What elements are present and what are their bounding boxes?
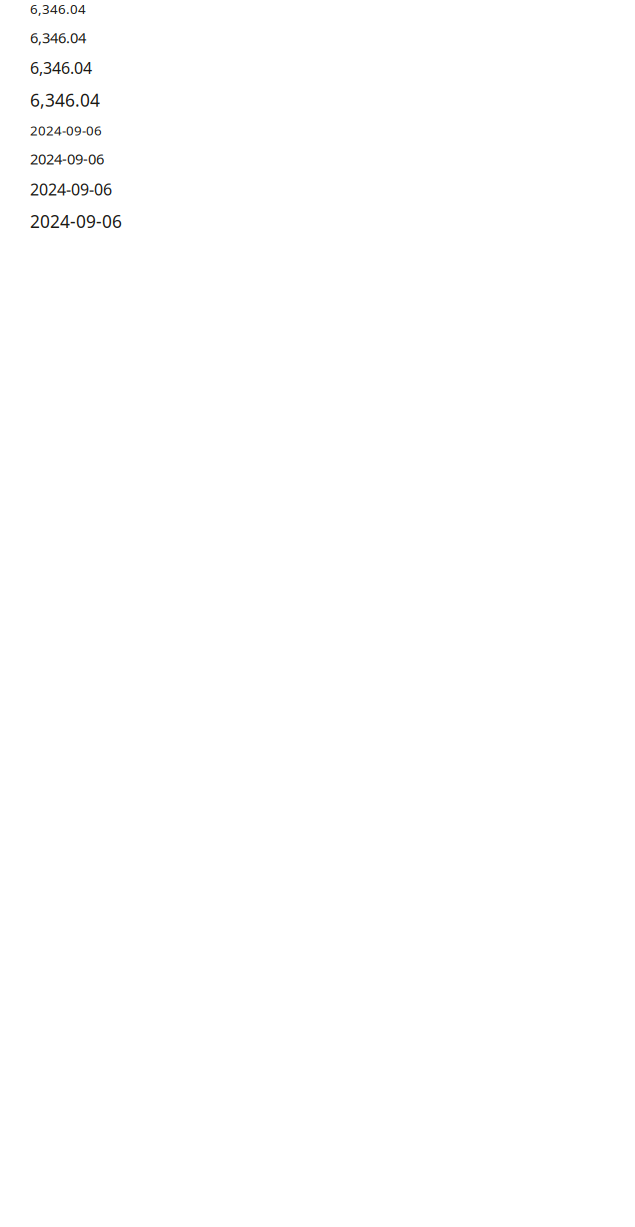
staticText: 6,346.04	[30, 28, 86, 47]
staticText: 2024-09-06	[30, 149, 104, 169]
staticText: 2024-09-06	[30, 121, 102, 139]
staticText: 6,346.04	[30, 57, 92, 78]
staticText: 6,346.04	[30, 0, 86, 18]
staticText: 2024-09-06	[30, 210, 122, 233]
staticText: 6,346.04	[30, 88, 100, 111]
staticText: 2024-09-06	[30, 179, 112, 200]
